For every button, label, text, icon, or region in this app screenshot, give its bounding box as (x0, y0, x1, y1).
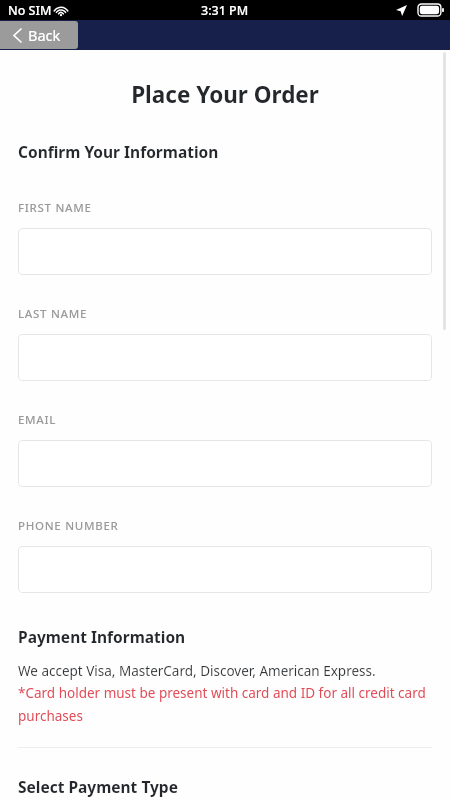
staticText: Payment Information (18, 626, 186, 647)
staticText: FIRST NAME (18, 200, 92, 216)
staticText: EMAIL (18, 412, 57, 428)
staticText: PHONE NUMBER (18, 518, 119, 534)
staticText: We accept Visa, MasterCard, Discover, Am… (18, 662, 376, 680)
staticText: Back (28, 25, 61, 45)
staticText: No SIM (8, 2, 52, 19)
button[interactable] (18, 228, 432, 275)
staticText: *Card holder must be present with card a… (18, 684, 432, 725)
button[interactable] (18, 440, 432, 487)
staticText: Confirm Your Information (18, 141, 219, 162)
button[interactable] (18, 334, 432, 381)
staticText: Place Your Order (0, 79, 450, 110)
button[interactable] (18, 546, 432, 593)
staticText: LAST NAME (18, 306, 88, 322)
staticText: Select Payment Type (18, 776, 178, 797)
button[interactable]: Back (0, 21, 78, 49)
staticText: 3:31 PM (201, 2, 249, 19)
